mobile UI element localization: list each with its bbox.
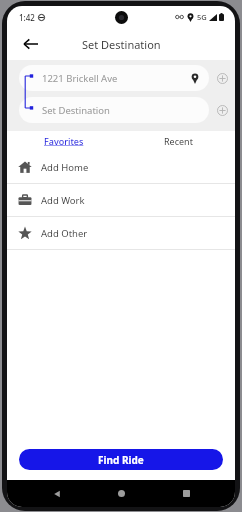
- staticText: Add Other: [41, 227, 88, 240]
- button[interactable]: Add Work: [7, 184, 235, 216]
- button[interactable]: Recent: [121, 131, 235, 151]
- button[interactable]: Find Ride: [19, 449, 223, 470]
- button[interactable]: Back: [17, 31, 43, 57]
- button[interactable]: Add Other: [7, 217, 235, 249]
- button[interactable]: Recent apps: [171, 480, 201, 507]
- button[interactable]: Add stop: [209, 97, 235, 123]
- staticText: Set Destination: [82, 37, 161, 52]
- staticText: 1221 Brickell Ave: [42, 72, 118, 85]
- staticText: Recent: [164, 135, 193, 147]
- staticText: 1:42: [19, 12, 35, 23]
- button[interactable]: Set Destination: [19, 97, 209, 123]
- button[interactable]: 1221 Brickell Ave: [19, 65, 209, 91]
- staticText: Add Home: [41, 161, 89, 174]
- staticText: Set Destination: [42, 104, 110, 117]
- button[interactable]: Favorites: [7, 131, 121, 151]
- staticText: Find Ride: [98, 453, 144, 467]
- staticText: 5G: [197, 12, 207, 22]
- button[interactable]: Back: [42, 480, 72, 507]
- staticText: Add Work: [41, 194, 85, 207]
- button[interactable]: Add stop: [209, 65, 235, 91]
- button[interactable]: Add Home: [7, 151, 235, 183]
- button[interactable]: Home: [106, 480, 136, 507]
- staticText: Favorites: [44, 135, 84, 147]
